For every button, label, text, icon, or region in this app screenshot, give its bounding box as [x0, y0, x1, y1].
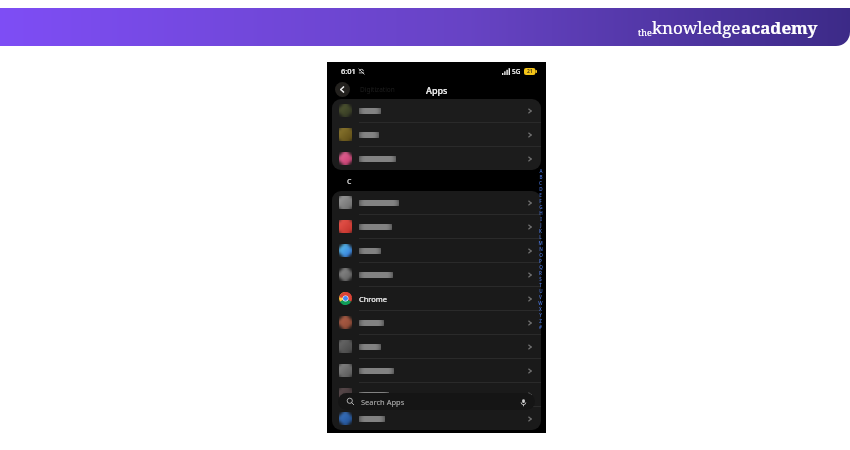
staticText: Q	[539, 264, 543, 270]
staticText: E	[539, 192, 542, 198]
staticText: U	[539, 288, 543, 294]
button[interactable]: Back	[335, 82, 350, 97]
staticText: academy	[741, 16, 818, 39]
button[interactable]	[332, 123, 541, 146]
staticText: Digitization	[360, 85, 395, 94]
staticText: N	[539, 246, 543, 252]
staticText: P	[539, 258, 542, 264]
button[interactable]	[332, 239, 541, 262]
staticText: 5G	[512, 67, 521, 76]
button[interactable]	[332, 147, 541, 170]
staticText: M	[538, 240, 543, 246]
staticText: Apps	[426, 84, 448, 96]
button[interactable]	[332, 335, 541, 358]
staticText: knowledge	[652, 16, 741, 39]
staticText: O	[539, 252, 543, 258]
button[interactable]: Search Apps	[338, 393, 535, 410]
button[interactable]	[332, 359, 541, 382]
staticText: X	[539, 306, 542, 312]
button[interactable]: Chrome	[332, 287, 541, 310]
staticText: T	[539, 282, 542, 288]
staticText: W	[538, 300, 543, 306]
button[interactable]: the	[0, 8, 850, 46]
staticText: the	[638, 26, 652, 38]
button[interactable]: Alphabet index	[536, 168, 545, 330]
staticText: 21	[527, 68, 533, 75]
staticText: Z	[539, 318, 542, 324]
staticText: C	[347, 177, 352, 187]
staticText: A	[539, 168, 543, 174]
button[interactable]	[332, 99, 541, 122]
button[interactable]	[332, 407, 541, 430]
staticText: D	[539, 186, 543, 192]
staticText: J	[540, 222, 542, 228]
staticText: K	[539, 228, 542, 234]
staticText: B	[539, 174, 543, 180]
staticText: I	[540, 216, 542, 222]
staticText: G	[539, 204, 543, 210]
button[interactable]	[332, 191, 541, 214]
button[interactable]: Voice search	[518, 397, 528, 407]
button[interactable]	[332, 383, 541, 406]
staticText: Y	[539, 312, 542, 318]
staticText: 6:01	[341, 66, 356, 76]
staticText: L	[539, 234, 542, 240]
staticText: R	[539, 270, 542, 276]
staticText: V	[539, 294, 542, 300]
staticText: H	[539, 210, 543, 216]
staticText: C	[539, 180, 542, 186]
staticText: Search Apps	[361, 397, 405, 407]
button[interactable]	[332, 311, 541, 334]
button[interactable]	[332, 263, 541, 286]
staticText: S	[539, 276, 542, 282]
staticText: Chrome	[359, 294, 388, 304]
button[interactable]	[332, 215, 541, 238]
staticText: #	[539, 324, 542, 330]
staticText: F	[539, 198, 542, 204]
